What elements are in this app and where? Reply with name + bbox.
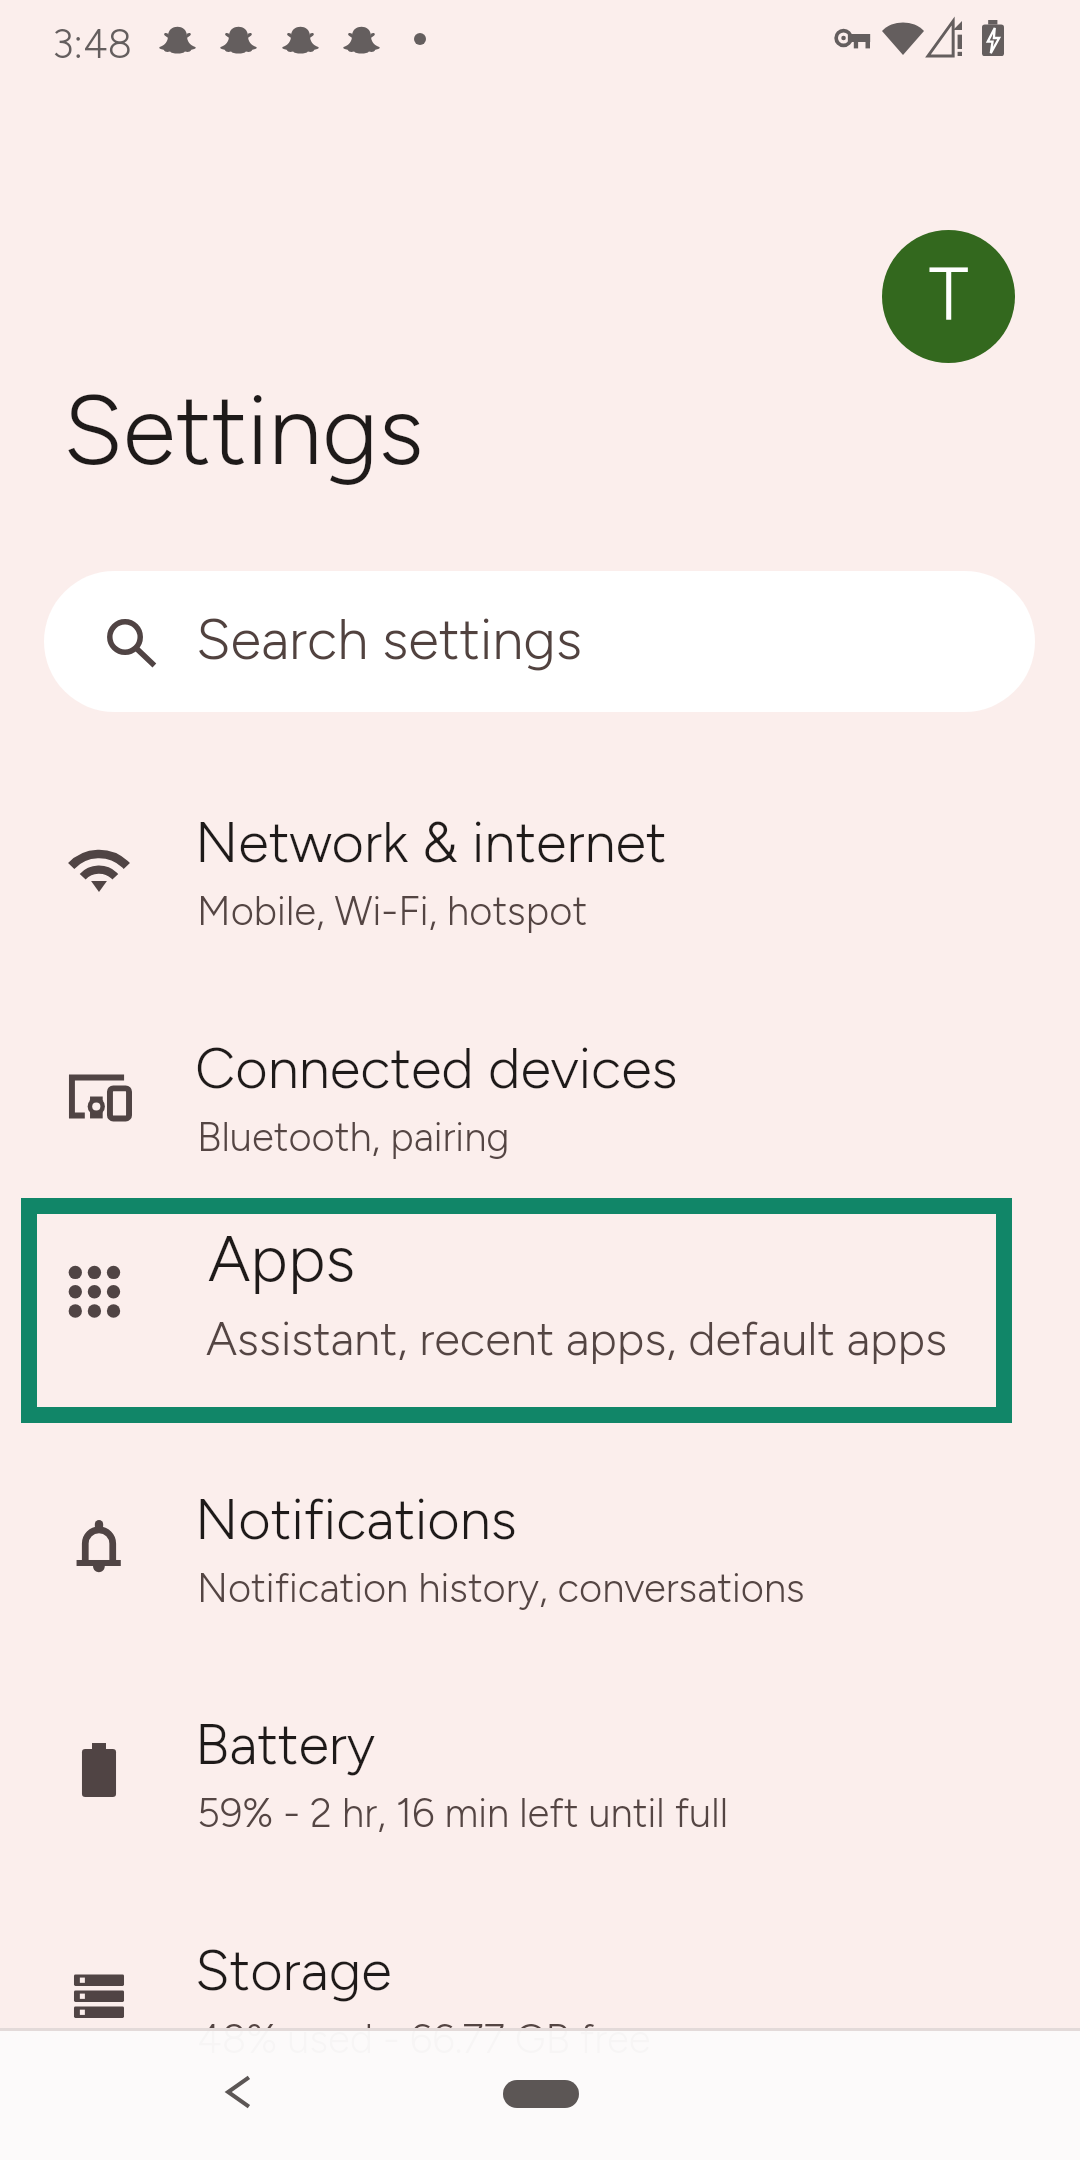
- staticText: Storage: [195, 1937, 392, 2004]
- staticText: Mobile, Wi-Fi, hotspot: [197, 887, 588, 935]
- staticText: Search settings: [196, 606, 583, 673]
- button[interactable]: Network & internet: [0, 765, 1080, 990]
- staticText: Notifications: [195, 1486, 517, 1553]
- staticText: Network & internet: [195, 809, 667, 876]
- button[interactable]: Search settings: [44, 571, 1035, 712]
- staticText: 59% - 2 hr, 16 min left until full: [197, 1789, 729, 1837]
- staticText: Connected devices: [195, 1035, 678, 1102]
- button[interactable]: Storage: [0, 1893, 1080, 2118]
- button[interactable]: Notifications: [0, 1442, 1080, 1667]
- staticText: T: [929, 251, 969, 339]
- button[interactable]: Apps: [0, 1216, 1080, 1441]
- staticText: Apps: [208, 1220, 356, 1297]
- button[interactable]: Account: [882, 230, 1015, 363]
- button[interactable]: Home: [503, 2080, 579, 2108]
- button[interactable]: Connected devices: [0, 991, 1080, 1216]
- staticText: Battery: [195, 1711, 376, 1778]
- staticText: 48% used - 66.77 GB free: [197, 2015, 651, 2063]
- button[interactable]: Back: [225, 2075, 251, 2109]
- button[interactable]: Battery: [0, 1667, 1080, 1892]
- staticText: Settings: [63, 372, 424, 488]
- staticText: Bluetooth, pairing: [197, 1113, 510, 1161]
- staticText: Notification history, conversations: [197, 1564, 805, 1612]
- staticText: 3:48: [52, 20, 133, 68]
- staticText: Assistant, recent apps, default apps: [206, 1310, 948, 1366]
